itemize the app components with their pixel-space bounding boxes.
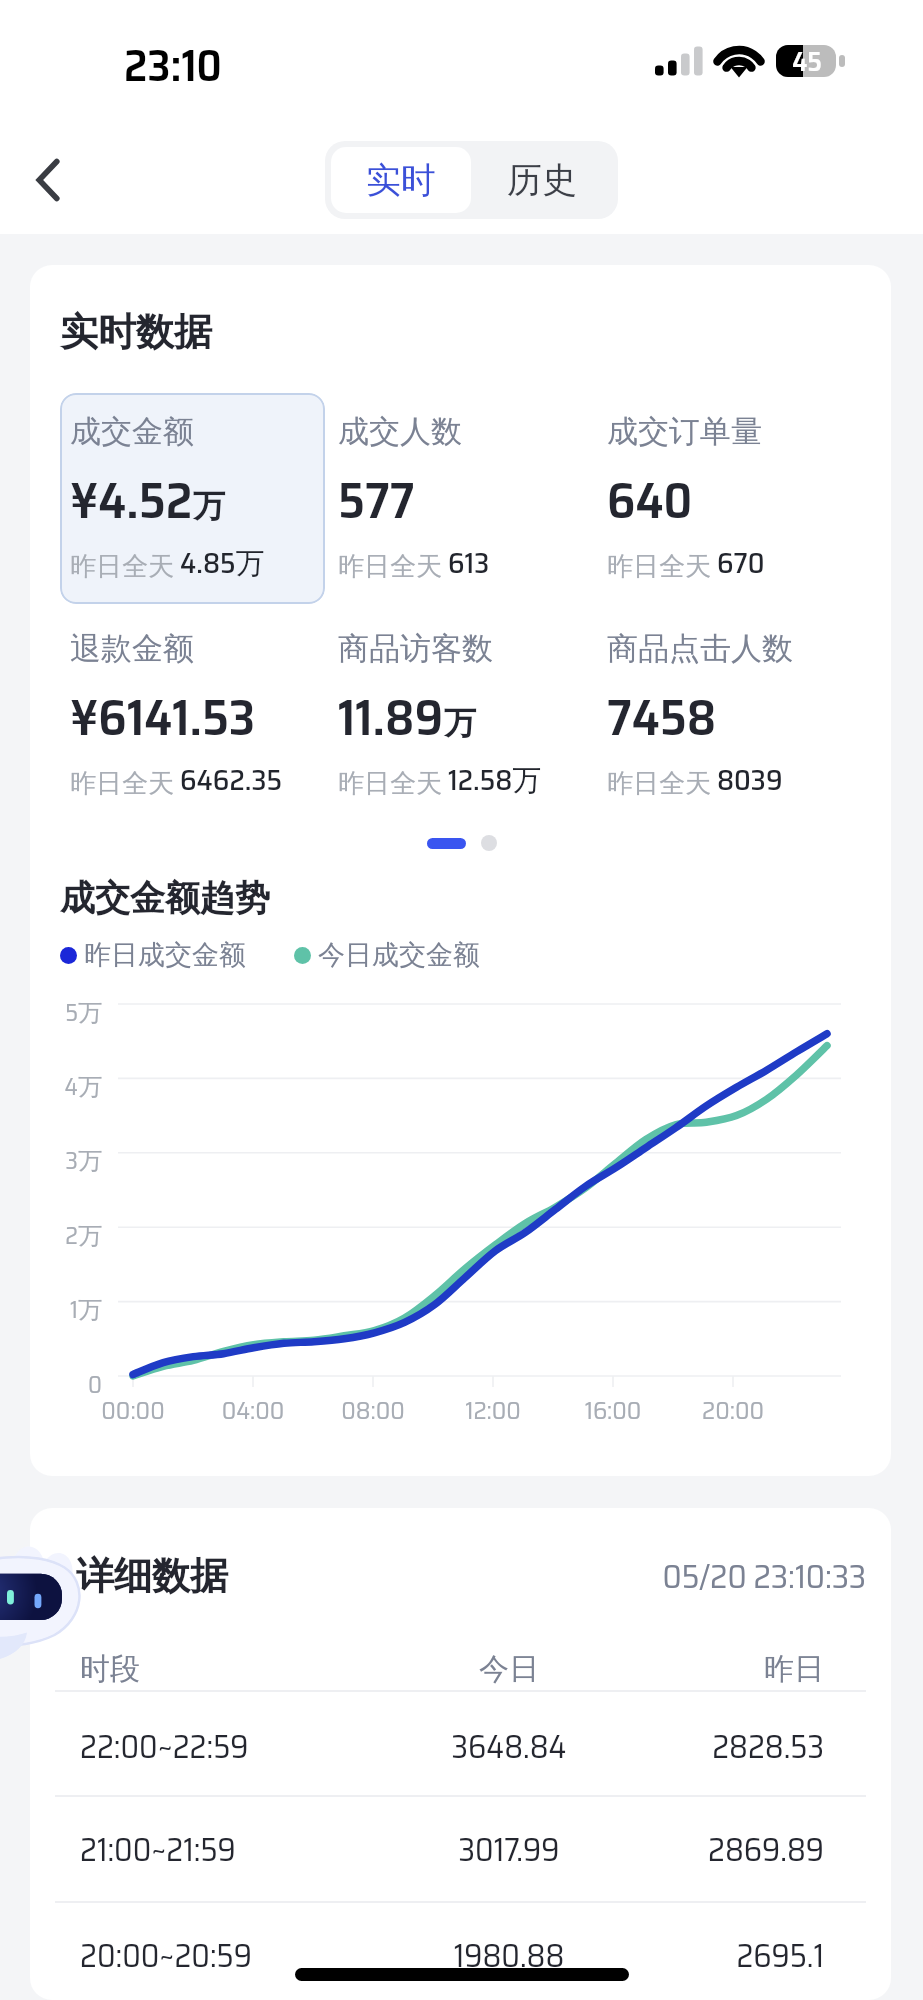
staticText: 45	[777, 40, 837, 82]
button[interactable]: Page 1	[427, 832, 466, 854]
staticText: 今日成交金额	[318, 938, 480, 972]
button[interactable]: 成交金额	[70, 412, 320, 586]
button[interactable]	[60, 393, 325, 604]
button[interactable]: 历史	[471, 147, 612, 213]
staticText: 实时数据	[60, 308, 212, 356]
staticText: 00:00	[73, 1391, 193, 1430]
staticText: 历史	[507, 158, 577, 202]
staticText: 2828.53	[524, 1722, 824, 1772]
staticText: 商品点击人数	[607, 629, 793, 668]
staticText: 0	[30, 1366, 102, 1404]
staticText: 昨日全天	[70, 545, 180, 586]
staticText: 20:00~20:59	[80, 1931, 252, 1981]
staticText: 2695.1	[524, 1931, 824, 1981]
staticText: 640	[607, 461, 693, 540]
staticText: 23:10	[124, 31, 222, 100]
staticText: 今日	[359, 1650, 659, 1688]
staticText: 成交订单量	[607, 412, 762, 451]
staticText: 670	[717, 540, 765, 586]
staticText: 11.89	[338, 678, 444, 757]
staticText: 577	[338, 461, 415, 540]
staticText: 万	[444, 703, 476, 743]
staticText: 12:00	[433, 1391, 553, 1430]
staticText: 昨日成交金额	[84, 938, 246, 972]
staticText: 8039	[717, 757, 783, 803]
staticText: 1万	[30, 1291, 102, 1329]
button[interactable]: 实时	[331, 147, 471, 213]
button[interactable]: AI assistant	[0, 1540, 87, 1665]
staticText: 2万	[30, 1217, 102, 1255]
staticText: 时段	[80, 1650, 140, 1688]
button[interactable]: 商品点击人数	[607, 629, 857, 803]
staticText: 3017.99	[359, 1825, 659, 1875]
button[interactable]: Page 2	[478, 832, 500, 854]
button[interactable]: 成交订单量	[607, 412, 857, 586]
staticText: ¥4.52	[70, 461, 193, 540]
button[interactable]: 22:00~22:59	[30, 1722, 891, 1782]
staticText: 21:00~21:59	[80, 1825, 236, 1875]
staticText: 成交人数	[338, 412, 462, 451]
button[interactable]: 21:00~21:59	[30, 1825, 891, 1885]
staticText: 4.85万	[180, 540, 265, 586]
staticText: 实时	[366, 158, 436, 202]
staticText: 昨日全天	[607, 762, 717, 803]
staticText: 昨日全天	[70, 762, 180, 803]
staticText: 成交金额	[70, 412, 194, 451]
staticText: 613	[448, 540, 490, 586]
staticText: 成交金额趋势	[60, 876, 270, 920]
staticText: 商品访客数	[338, 629, 493, 668]
staticText: 05/20 23:10:33	[556, 1551, 866, 1603]
staticText: 6462.35	[180, 757, 282, 803]
staticText: 4万	[30, 1068, 102, 1106]
button[interactable]: 商品访客数	[338, 629, 588, 803]
staticText: 昨日全天	[338, 545, 448, 586]
button[interactable]: 退款金额	[70, 629, 320, 803]
staticText: 20:00	[673, 1391, 793, 1430]
staticText: 16:00	[553, 1391, 673, 1430]
staticText: 2869.89	[524, 1825, 824, 1875]
staticText: 5万	[30, 994, 102, 1032]
staticText: 退款金额	[70, 629, 194, 668]
staticText: 3648.84	[359, 1722, 659, 1772]
button[interactable]: 20:00~20:59	[30, 1931, 891, 1991]
staticText: 3万	[30, 1142, 102, 1180]
staticText: 昨日全天	[607, 545, 717, 586]
staticText: ¥6141.53	[70, 678, 256, 757]
staticText: 万	[193, 486, 225, 526]
staticText: 22:00~22:59	[80, 1722, 249, 1772]
staticText: 04:00	[193, 1391, 313, 1430]
button[interactable]: Back	[9, 141, 87, 219]
staticText: 详细数据	[76, 1552, 228, 1600]
button[interactable]: 成交人数	[338, 412, 588, 586]
staticText: 7458	[607, 678, 717, 757]
staticText: 昨日全天	[338, 762, 448, 803]
staticText: 12.58万	[448, 757, 542, 803]
staticText: 08:00	[313, 1391, 433, 1430]
staticText: 1980.88	[359, 1931, 659, 1981]
staticText: 昨日	[524, 1650, 824, 1688]
